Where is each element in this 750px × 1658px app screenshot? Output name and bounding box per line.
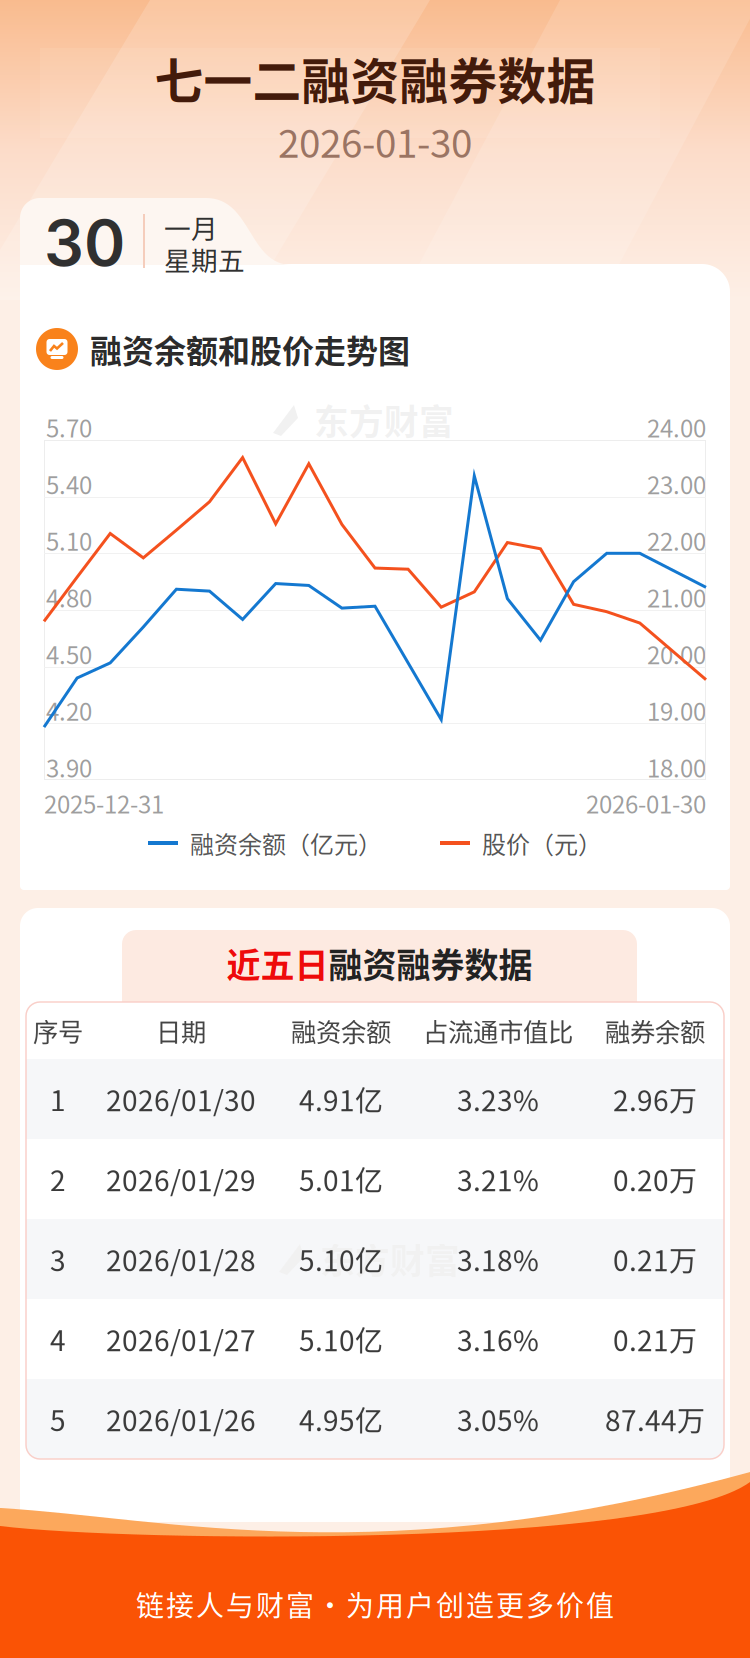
button[interactable]: 0.21万 — [586, 1219, 724, 1299]
staticText: 七一二融资融券数据 — [154, 43, 595, 113]
button[interactable]: 2 — [26, 1139, 90, 1219]
staticText: 2026-01-30 — [278, 113, 472, 169]
staticText: 0.21万 — [613, 1319, 697, 1359]
staticText: 财 — [256, 1584, 284, 1624]
staticText: 占流通市值比 — [423, 1012, 573, 1049]
staticText: 24.00 — [647, 410, 706, 444]
staticText: 2026/01/29 — [106, 1159, 256, 1199]
staticText: 5 — [50, 1399, 66, 1439]
button[interactable]: 1 — [26, 1059, 90, 1139]
staticText: 5.10亿 — [299, 1319, 383, 1359]
staticText: 链 — [136, 1584, 164, 1624]
button[interactable]: 链 — [0, 1581, 750, 1627]
staticText: 融资余额 — [291, 1012, 391, 1049]
staticText: 近五日 — [226, 938, 328, 988]
staticText: 2026/01/26 — [106, 1399, 256, 1439]
staticText: 更 — [496, 1584, 524, 1624]
staticText: 户 — [406, 1584, 434, 1624]
staticText: 东方财富 — [320, 1234, 460, 1284]
staticText: 18.00 — [647, 750, 706, 784]
staticText: 30 — [44, 205, 125, 281]
button[interactable]: 3.16% — [410, 1299, 586, 1379]
staticText: 2 — [50, 1159, 66, 1199]
staticText: 融资余额（亿元） — [190, 826, 382, 860]
staticText: 2026/01/28 — [106, 1239, 256, 1279]
button[interactable]: 2026/01/27 — [90, 1299, 272, 1379]
staticText: 2026/01/27 — [106, 1319, 256, 1359]
staticText: 值 — [586, 1584, 614, 1624]
staticText: 1 — [50, 1079, 66, 1119]
staticText: 价 — [556, 1584, 584, 1624]
button[interactable]: 4 — [26, 1299, 90, 1379]
staticText: 2026/01/30 — [106, 1079, 256, 1119]
button[interactable]: 3.18% — [410, 1219, 586, 1299]
button[interactable]: 3 — [26, 1219, 90, 1299]
staticText: 富 — [286, 1584, 314, 1624]
staticText: 接 — [166, 1584, 194, 1624]
staticText: 87.44万 — [605, 1399, 705, 1439]
button[interactable]: 87.44万 — [586, 1379, 724, 1459]
staticText: 4.50 — [46, 636, 92, 671]
button[interactable]: 4.95亿 — [272, 1379, 410, 1459]
staticText: 日期 — [156, 1012, 206, 1049]
button[interactable]: 2.96万 — [586, 1059, 724, 1139]
staticText: 4.80 — [46, 580, 92, 614]
button[interactable]: 5 — [26, 1379, 90, 1459]
button[interactable]: 3.21% — [410, 1139, 586, 1219]
staticText: 人 — [196, 1584, 224, 1624]
staticText: 创 — [436, 1584, 464, 1624]
staticText: 3.16% — [457, 1319, 539, 1359]
button[interactable]: 0.21万 — [586, 1299, 724, 1379]
staticText: 2.96万 — [613, 1079, 697, 1119]
staticText: 融资融券数据 — [328, 938, 532, 988]
staticText: 5.70 — [46, 410, 92, 444]
staticText: 3.18% — [457, 1239, 539, 1279]
staticText: 23.00 — [647, 466, 706, 501]
staticText: 0.20万 — [613, 1159, 697, 1199]
button[interactable]: 4.91亿 — [272, 1059, 410, 1139]
staticText: 3.05% — [457, 1399, 539, 1439]
button[interactable]: 0.20万 — [586, 1139, 724, 1219]
staticText: 造 — [466, 1584, 494, 1624]
staticText: 股价（元） — [482, 826, 602, 860]
staticText: 5.10亿 — [299, 1239, 383, 1279]
staticText: 22.00 — [647, 523, 706, 558]
staticText: 为 — [346, 1584, 374, 1624]
staticText: 5.10 — [46, 523, 92, 558]
staticText: 序号 — [33, 1012, 83, 1049]
button[interactable]: 5.10亿 — [272, 1219, 410, 1299]
staticText: 与 — [226, 1584, 254, 1624]
staticText: 19.00 — [647, 693, 706, 728]
button[interactable]: 2026/01/30 — [90, 1059, 272, 1139]
staticText: 3.23% — [457, 1079, 539, 1119]
staticText: 5.01亿 — [299, 1159, 383, 1199]
staticText: 融资余额和股价走势图 — [90, 326, 410, 372]
staticText: 星期五 — [164, 240, 245, 278]
staticText: 20.00 — [647, 636, 706, 671]
button[interactable]: 3.05% — [410, 1379, 586, 1459]
button[interactable]: 5.10亿 — [272, 1299, 410, 1379]
button[interactable]: 2026/01/28 — [90, 1219, 272, 1299]
staticText: 2026-01-30 — [586, 786, 706, 820]
staticText: 3 — [50, 1239, 66, 1279]
staticText: 2025-12-31 — [44, 786, 164, 820]
staticText: 5.40 — [46, 466, 92, 501]
staticText: 4.20 — [46, 693, 92, 728]
staticText: · — [316, 1584, 344, 1624]
staticText: 4.91亿 — [299, 1079, 383, 1119]
button[interactable]: 3.23% — [410, 1059, 586, 1139]
staticText: 一月 — [164, 208, 218, 246]
staticText: 3.21% — [457, 1159, 539, 1199]
staticText: 4 — [50, 1319, 66, 1359]
button[interactable]: 5.01亿 — [272, 1139, 410, 1219]
staticText: 多 — [526, 1584, 554, 1624]
button[interactable]: 2026/01/26 — [90, 1379, 272, 1459]
staticText: 东方财富 — [314, 395, 454, 445]
staticText: 融券余额 — [605, 1012, 705, 1049]
staticText: 3.90 — [46, 750, 92, 784]
staticText: 21.00 — [647, 580, 706, 614]
staticText: 用 — [376, 1584, 404, 1624]
button[interactable]: 2026/01/29 — [90, 1139, 272, 1219]
staticText: 4.95亿 — [299, 1399, 383, 1439]
staticText: 0.21万 — [613, 1239, 697, 1279]
